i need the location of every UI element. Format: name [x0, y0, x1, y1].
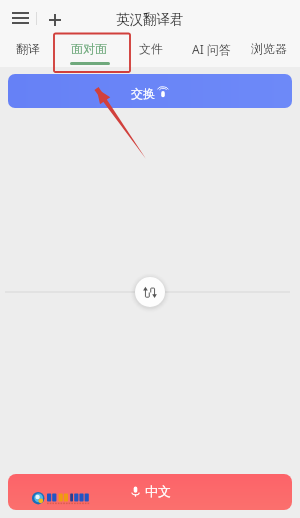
staticText: 浏览器: [251, 41, 287, 56]
button[interactable]: Menu: [6, 4, 34, 32]
button[interactable]: 中文: [8, 474, 292, 510]
staticText: 中文: [145, 483, 171, 499]
button[interactable]: 文件: [125, 34, 177, 64]
button[interactable]: 翻译: [2, 34, 54, 64]
staticText: 文件: [139, 41, 163, 56]
staticText: 翻译: [16, 41, 40, 56]
button[interactable]: 交换: [8, 74, 292, 108]
button[interactable]: 浏览器: [243, 34, 295, 64]
staticText: 英汉翻译君: [116, 11, 184, 28]
button[interactable]: 面对面: [63, 34, 115, 64]
button[interactable]: Add: [41, 6, 68, 33]
staticText: 交换: [131, 86, 155, 101]
staticText: AI 问答: [192, 41, 231, 57]
button[interactable]: Swap languages: [135, 277, 165, 307]
button[interactable]: AI 问答: [185, 34, 237, 64]
staticText: 面对面: [71, 41, 107, 56]
